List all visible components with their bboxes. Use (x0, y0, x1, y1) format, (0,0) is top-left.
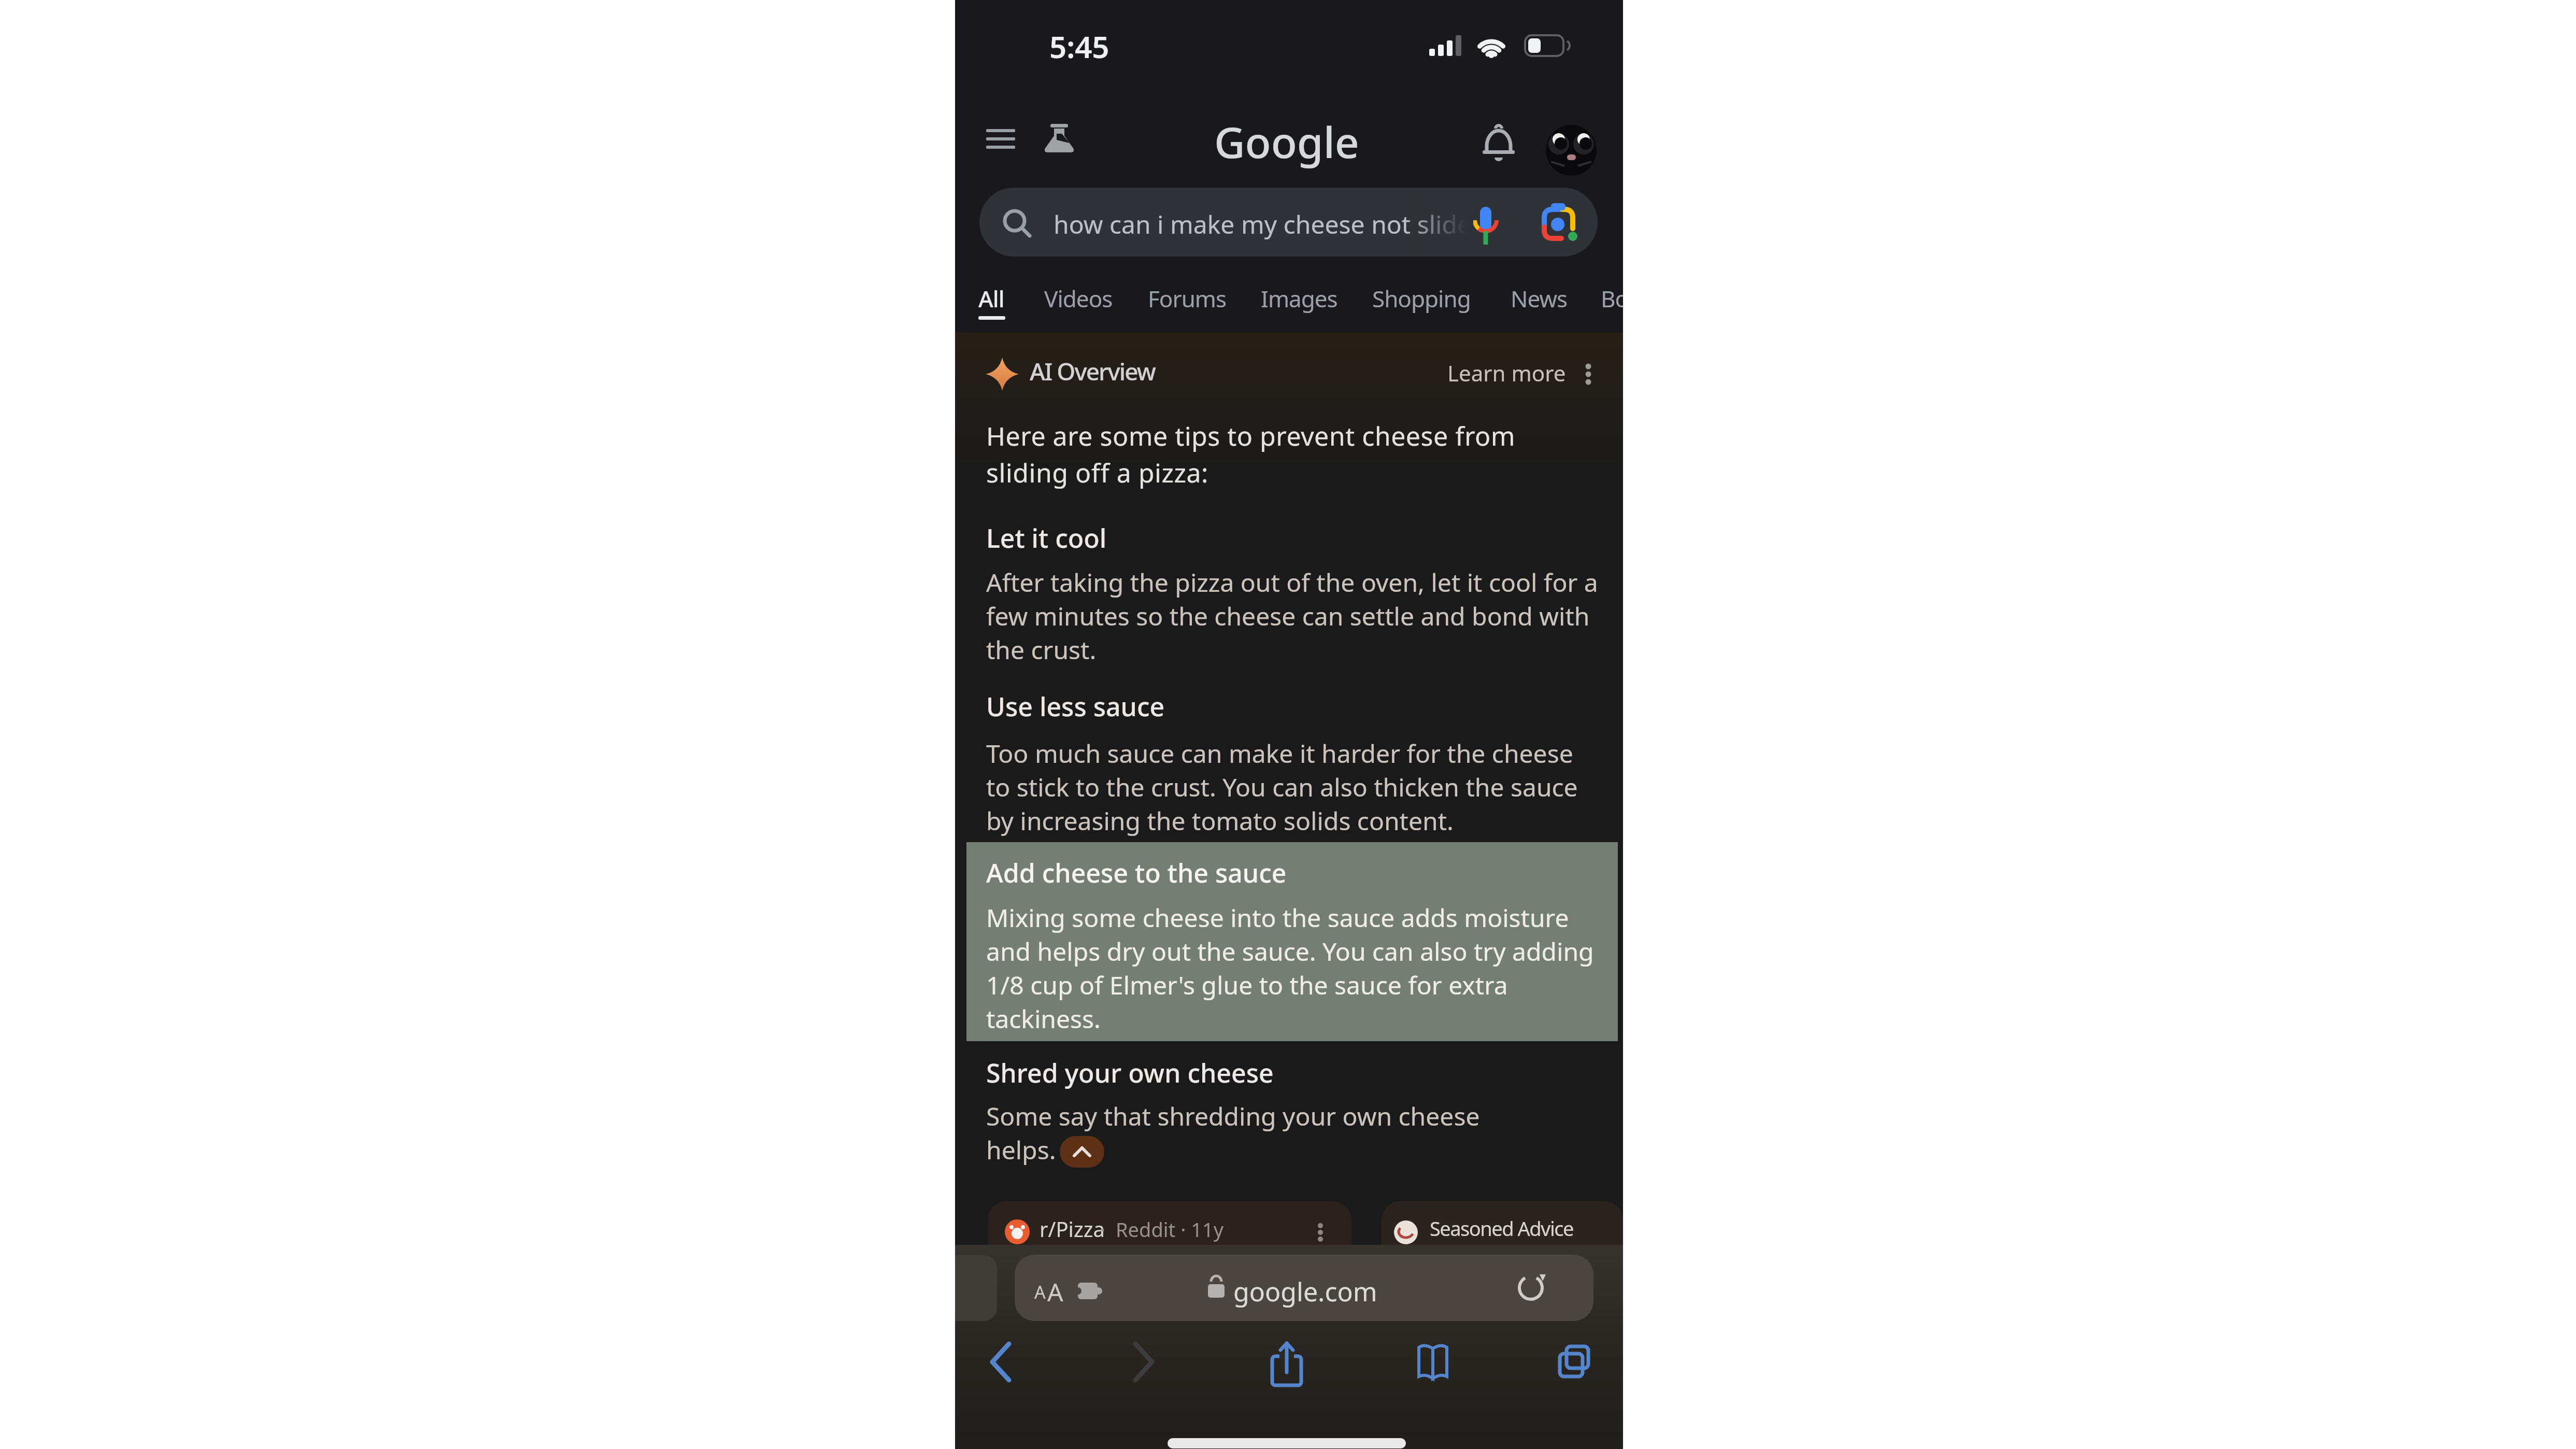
staticText: google.com (1233, 1274, 1377, 1309)
button[interactable]: Videos (1044, 283, 1113, 314)
staticText: After taking the pizza out of the oven, … (986, 565, 1598, 666)
staticText: Shred your own cheese (986, 1055, 1274, 1090)
staticText: Google (1214, 112, 1359, 171)
button[interactable]: Shopping (1372, 283, 1471, 314)
button[interactable] (1411, 1337, 1458, 1389)
button[interactable]: r/Pizza (1040, 1215, 1105, 1243)
button[interactable] (1546, 125, 1597, 176)
button[interactable] (979, 188, 1598, 257)
staticText: AI Overview (1030, 355, 1155, 388)
button[interactable] (1541, 202, 1579, 244)
staticText: 5:45 (1049, 26, 1109, 67)
staticText: Mixing some cheese into the sauce adds m… (986, 901, 1594, 1035)
staticText: Use less sauce (986, 689, 1165, 724)
button[interactable] (986, 124, 1015, 153)
staticText: how can i make my cheese not slide (1054, 207, 1472, 241)
staticText: Some say that shredding your own cheese (986, 1099, 1480, 1133)
button[interactable] (1060, 1136, 1104, 1168)
staticText: Let it cool (986, 520, 1107, 556)
staticText: A (1047, 1275, 1063, 1309)
button[interactable] (986, 1337, 1033, 1389)
button[interactable] (1266, 1337, 1313, 1389)
staticText: · Reddit · 11y (1100, 1216, 1224, 1243)
button[interactable] (1015, 1255, 1593, 1321)
button[interactable] (1044, 122, 1075, 153)
button[interactable] (1484, 124, 1515, 155)
button[interactable]: Forums (1148, 283, 1227, 314)
button[interactable]: Learn more (1447, 358, 1566, 388)
button[interactable] (988, 1201, 1351, 1263)
button[interactable] (1468, 202, 1504, 249)
button[interactable]: News (1511, 283, 1568, 314)
button[interactable] (1554, 1337, 1600, 1389)
staticText: Add cheese to the sauce (986, 855, 1287, 890)
button[interactable] (1382, 1201, 1623, 1263)
button[interactable]: Seasoned Advice (1430, 1215, 1573, 1242)
staticText: A (1034, 1280, 1046, 1304)
button[interactable]: Images (1261, 283, 1337, 314)
button[interactable]: All (978, 283, 1004, 314)
staticText: Here are some tips to prevent cheese fro… (986, 418, 1516, 490)
staticText: Bo (1601, 283, 1623, 314)
staticText: Too much sauce can make it harder for th… (986, 736, 1578, 837)
button[interactable] (1129, 1337, 1175, 1389)
button[interactable] (1572, 352, 1603, 399)
staticText: helps. (986, 1133, 1056, 1167)
